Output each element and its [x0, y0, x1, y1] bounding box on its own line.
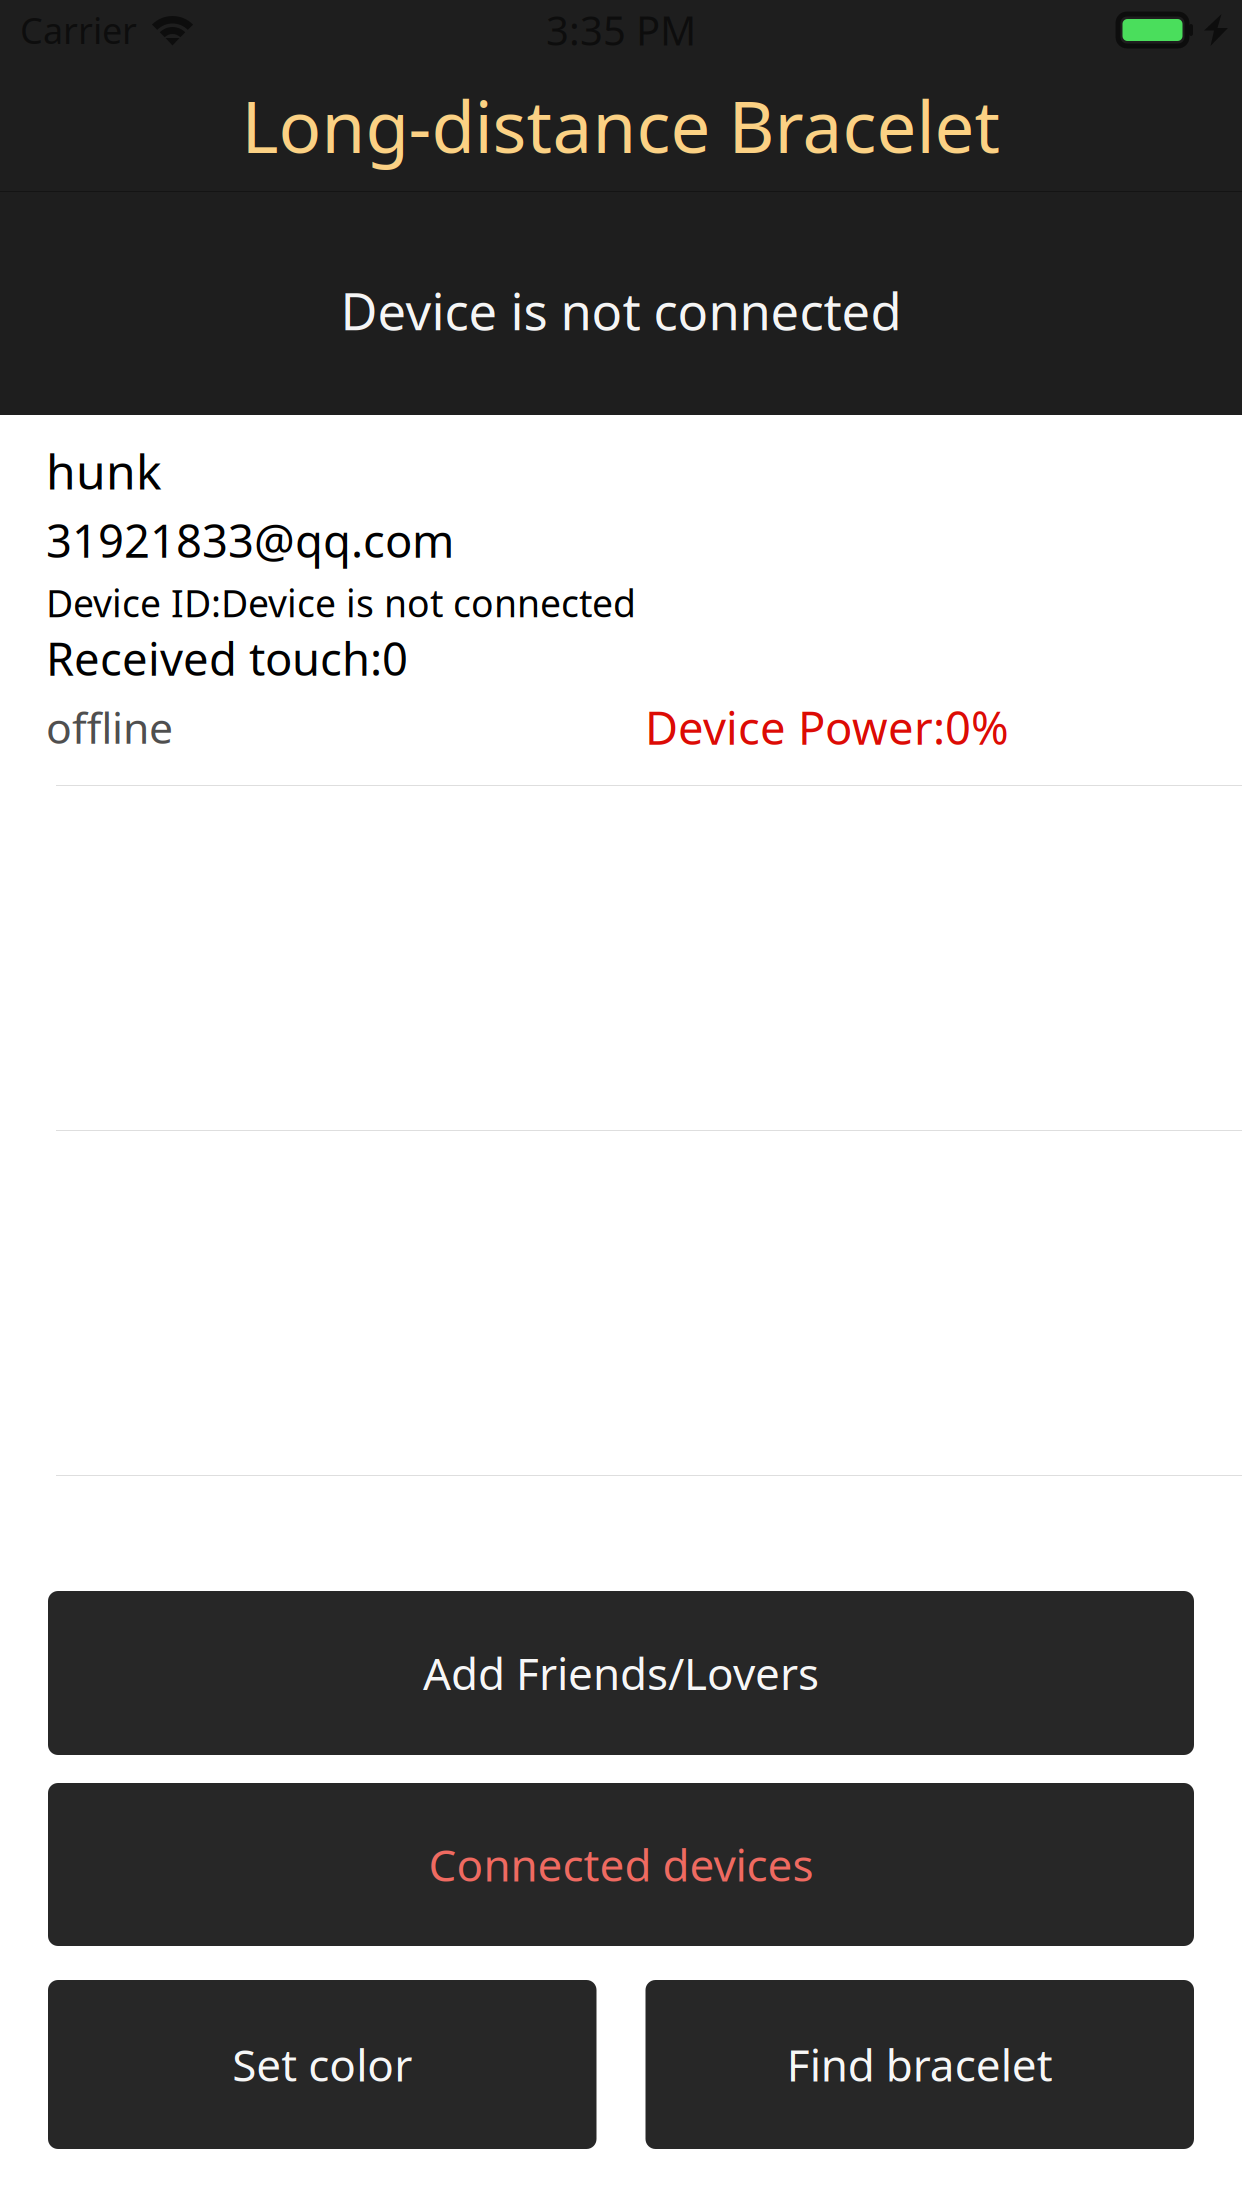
staticText: offline — [46, 699, 173, 755]
staticText: Received touch:0 — [46, 628, 408, 688]
staticText: Add Friends/Lovers — [423, 1644, 819, 1702]
staticText: Device Power:0% — [645, 697, 1009, 757]
staticText: Set color — [232, 2035, 412, 2094]
button[interactable]: Find bracelet — [645, 1980, 1194, 2149]
staticText: hunk — [46, 439, 162, 503]
staticText: Find bracelet — [787, 2035, 1053, 2094]
staticText: Device ID:Device is not connected — [46, 578, 636, 628]
staticText: Device is not connected — [340, 277, 901, 344]
button[interactable]: Connected devices — [48, 1783, 1194, 1946]
staticText: Carrier — [20, 6, 137, 54]
staticText: Connected devices — [428, 1835, 813, 1894]
staticText: 3:35 PM — [546, 3, 696, 56]
staticText: Long-distance Bracelet — [241, 79, 1000, 172]
staticText: 31921833@qq.com — [46, 510, 454, 570]
button[interactable]: Set color — [48, 1980, 596, 2149]
button[interactable]: Add Friends/Lovers — [48, 1591, 1194, 1755]
